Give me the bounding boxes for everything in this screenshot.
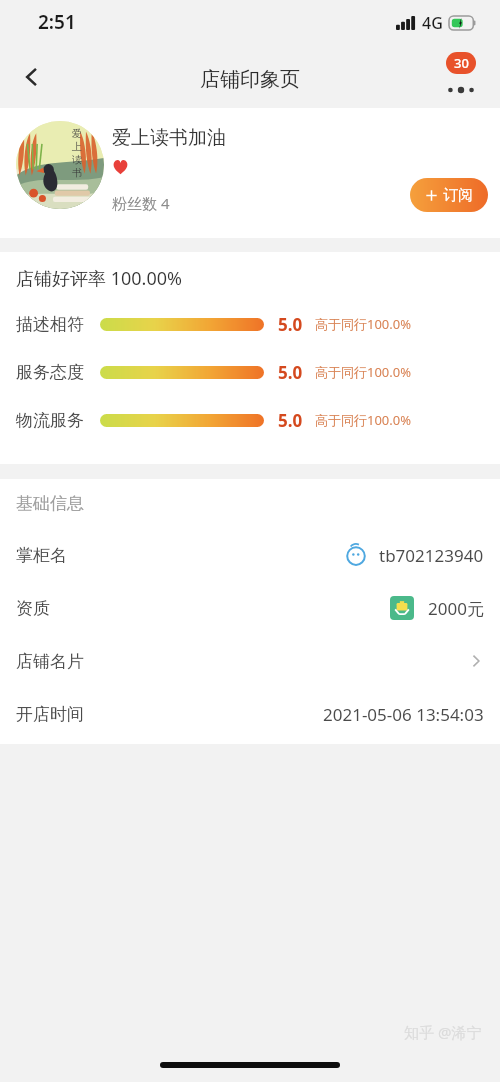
staticText: 物流服务 [16,410,84,431]
staticText: 订阅 [443,186,473,205]
staticText: 上 [72,140,82,153]
button[interactable]: 掌柜名 [0,536,500,574]
staticText: 30 [454,54,469,72]
staticText: 基础信息 [16,493,84,514]
staticText: 读 [72,153,82,166]
staticText: 店铺好评率 100.00% [16,266,182,291]
button[interactable]: 资质 [0,589,500,627]
staticText: 5.0 [278,313,303,336]
staticText: 资质 [16,598,50,619]
staticText: 高于同行100.0% [315,411,412,429]
staticText: 书 [72,166,82,179]
staticText: 爱上读书加油 [112,126,226,150]
staticText: 店铺印象页 [200,67,300,92]
staticText: 描述相符 [16,314,84,335]
staticText: 5.0 [278,409,303,432]
button[interactable]: 开店时间 [0,695,500,733]
button[interactable]: More options [434,50,488,104]
staticText: 2000元 [428,597,484,620]
staticText: 店铺名片 [16,651,84,672]
staticText: 开店时间 [16,704,84,725]
staticText: 粉丝数 4 [112,193,170,213]
staticText: 掌柜名 [16,545,67,566]
staticText: 2:51 [38,9,76,35]
button[interactable]: Back [8,53,56,101]
staticText: 2021-05-06 13:54:03 [323,703,484,726]
button[interactable]: 订阅 [410,178,488,212]
staticText: 知乎 @浠宁 [404,1022,482,1042]
staticText: 5.0 [278,361,303,384]
button[interactable]: Shop avatar [16,121,104,209]
staticText: 高于同行100.0% [315,315,412,333]
button[interactable]: 店铺名片 [0,642,500,680]
staticText: 高于同行100.0% [315,363,412,381]
staticText: 4G [422,12,443,34]
staticText: 爱 [72,127,82,140]
staticText: tb702123940 [379,544,484,567]
staticText: 服务态度 [16,362,84,383]
